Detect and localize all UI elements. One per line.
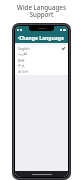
- button[interactable]: हिन्दी: [15, 57, 68, 63]
- staticText: 中文: [18, 64, 25, 68]
- button[interactable]: 한국어: [15, 69, 68, 75]
- staticText: Wide Languages Support: [6, 3, 77, 19]
- staticText: हिन्दी: [18, 58, 25, 63]
- staticText: العربية: [18, 52, 28, 56]
- staticText: Change Language: [19, 35, 64, 42]
- button[interactable]: English: [15, 45, 68, 51]
- button[interactable]: Back: [15, 34, 23, 42]
- button[interactable]: العربية: [15, 51, 68, 57]
- staticText: 한국어: [18, 70, 29, 74]
- staticText: English: [18, 46, 30, 51]
- button[interactable]: 中文: [15, 63, 68, 69]
